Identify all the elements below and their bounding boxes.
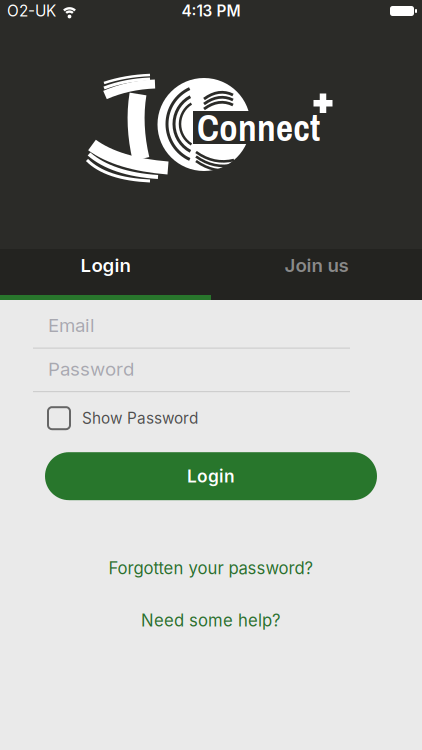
staticText: Connect [197, 102, 320, 153]
staticText: Join us [284, 254, 348, 277]
button[interactable]: Show Password [0, 407, 198, 429]
button[interactable]: Need some help? [0, 610, 422, 630]
button[interactable]: Forgotten your password? [0, 558, 422, 578]
staticText: 4:13 PM [181, 2, 240, 20]
staticText: Password [48, 358, 134, 380]
staticText: Login [80, 254, 130, 277]
staticText: Login [187, 466, 235, 487]
button[interactable]: Join us [211, 249, 422, 300]
button[interactable]: Login [0, 452, 377, 500]
button[interactable]: Email [0, 314, 350, 349]
staticText: Forgotten your password? [108, 558, 313, 578]
staticText: Need some help? [141, 610, 281, 630]
staticText: O2-UK [7, 2, 56, 20]
button[interactable]: Login [0, 249, 211, 300]
button[interactable]: Password [0, 358, 350, 392]
staticText: Show Password [82, 409, 198, 427]
staticText: Email [48, 314, 95, 337]
